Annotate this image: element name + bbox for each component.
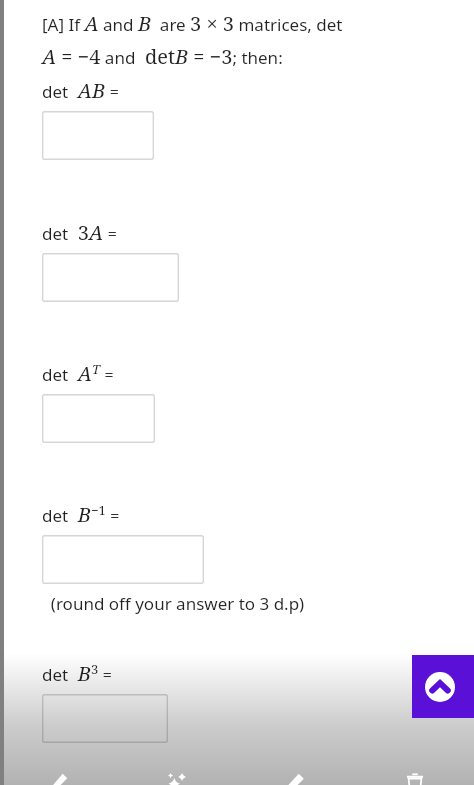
button[interactable]: Delete bbox=[355, 759, 474, 785]
staticText: det AB = bbox=[42, 77, 119, 104]
staticText: A = −4 and detB = −3; then: bbox=[42, 43, 283, 70]
staticText: det B3 = bbox=[42, 660, 113, 687]
button[interactable]: Pen bbox=[0, 759, 118, 785]
button[interactable] bbox=[42, 694, 168, 743]
button[interactable] bbox=[42, 394, 155, 443]
staticText: det AT = bbox=[42, 360, 114, 387]
button[interactable]: Scroll to top bbox=[412, 655, 474, 718]
button[interactable]: Magic bbox=[118, 759, 236, 785]
staticText: det B−1 = bbox=[42, 501, 120, 528]
staticText: (round off your answer to 3 d.p) bbox=[42, 592, 305, 615]
staticText: [A] If A and B are 3 × 3 matrices, det bbox=[42, 10, 343, 37]
button[interactable] bbox=[42, 253, 179, 302]
staticText: det 3A = bbox=[42, 219, 118, 246]
button[interactable]: Highlighter bbox=[236, 759, 355, 785]
button[interactable] bbox=[42, 535, 204, 584]
button[interactable] bbox=[42, 111, 154, 160]
